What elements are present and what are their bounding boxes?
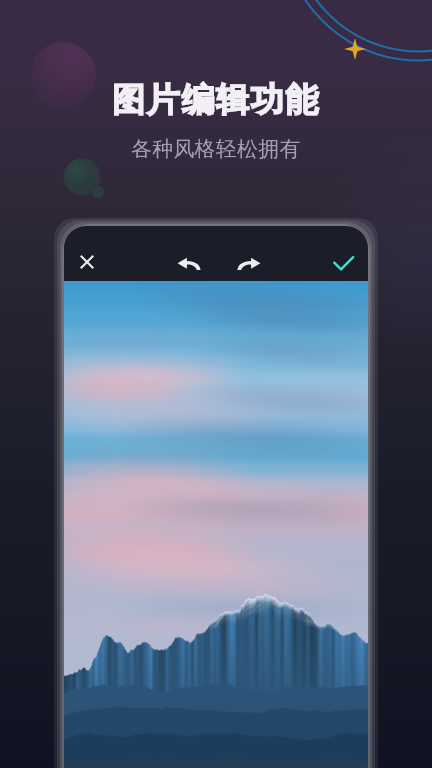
staticText: 图片编辑功能 <box>112 79 320 121</box>
button[interactable]: Redo <box>236 251 262 277</box>
image: Sunset mountain photo <box>64 281 368 768</box>
button[interactable]: Close editor <box>73 248 101 276</box>
button[interactable]: Apply changes <box>333 253 354 274</box>
staticText: 各种风格轻松拥有 <box>131 136 301 162</box>
button[interactable]: Undo <box>176 251 202 277</box>
